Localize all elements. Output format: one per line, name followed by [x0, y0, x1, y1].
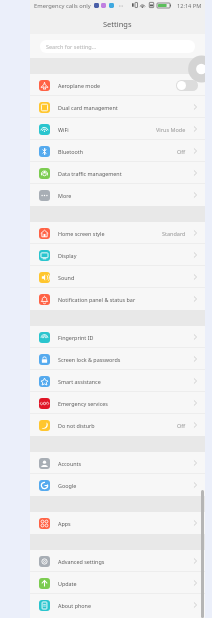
staticText: Standard	[162, 230, 186, 237]
button[interactable]: Search for setting...	[40, 40, 195, 53]
staticText: Fingerprint ID	[58, 334, 94, 341]
staticText: Apps	[58, 520, 71, 527]
staticText: Bluetooth	[58, 148, 84, 155]
staticText: Screen lock & passwords	[58, 356, 121, 363]
staticText: Search for setting...	[46, 43, 97, 50]
staticText: Advanced settings	[58, 558, 105, 565]
staticText: 12:14 PM	[177, 2, 202, 10]
button[interactable]: Dual card management	[30, 96, 205, 118]
staticText: Aeroplane mode	[58, 82, 101, 89]
button[interactable]: Display	[30, 244, 205, 266]
staticText: Settings	[103, 19, 132, 29]
button[interactable]: Accounts	[30, 452, 205, 474]
staticText: Notification panel & status bar	[58, 296, 136, 303]
staticText: Accounts	[58, 460, 82, 467]
button[interactable]: Screen lock & passwords	[30, 348, 205, 370]
button[interactable]: Sound	[30, 266, 205, 288]
button[interactable]: Update	[30, 572, 205, 594]
button[interactable]: Emergency services	[30, 392, 205, 414]
staticText: Data traffic management	[58, 170, 122, 177]
button[interactable]: Advanced settings	[30, 550, 205, 572]
staticText: Dual card management	[58, 104, 118, 111]
button[interactable]: Bluetooth	[30, 140, 205, 162]
staticText: Emergency calls only	[34, 2, 91, 10]
staticText: Home screen style	[58, 230, 105, 237]
button[interactable]: Notification panel & status bar	[30, 288, 205, 310]
staticText: About phone	[58, 602, 91, 609]
button[interactable]: Do not disturb	[30, 414, 205, 436]
button[interactable]: Aeroplane mode toggle	[176, 80, 198, 91]
staticText: Update	[58, 580, 77, 587]
staticText: Sound	[58, 274, 75, 281]
staticText: Google	[58, 482, 77, 489]
button[interactable]: Home screen style	[30, 222, 205, 244]
button[interactable]: Apps	[30, 512, 205, 534]
button[interactable]: More	[30, 184, 205, 206]
button[interactable]: Fingerprint ID	[30, 326, 205, 348]
button[interactable]: Smart assistance	[30, 370, 205, 392]
staticText: Virus Mode	[156, 126, 186, 133]
button[interactable]: Data traffic management	[30, 162, 205, 184]
staticText: WiFi	[58, 126, 69, 133]
button[interactable]: About phone	[30, 594, 205, 616]
button[interactable]: Google	[30, 474, 205, 496]
staticText: Smart assistance	[58, 378, 101, 385]
button[interactable]: WiFi	[30, 118, 205, 140]
button[interactable]: Aeroplane mode	[30, 74, 205, 96]
staticText: Do not disturb	[58, 422, 95, 429]
staticText: Display	[58, 252, 77, 259]
staticText: Emergency services	[58, 400, 108, 407]
staticText: More	[58, 192, 72, 199]
staticText: Off	[177, 148, 186, 155]
staticText: Off	[177, 422, 186, 429]
